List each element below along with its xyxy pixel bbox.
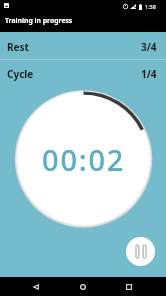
staticText: 1:38 bbox=[145, 3, 156, 10]
staticText: 3/4 bbox=[141, 40, 157, 54]
button[interactable]: Recent apps bbox=[117, 277, 141, 296]
staticText: Rest bbox=[7, 40, 29, 54]
button[interactable]: Cycle bbox=[0, 60, 166, 87]
staticText: 1/4 bbox=[141, 67, 157, 81]
staticText: Training in progress bbox=[5, 16, 73, 25]
button[interactable]: Pause bbox=[126, 237, 155, 266]
button[interactable]: Home bbox=[71, 277, 95, 296]
button[interactable]: Back bbox=[24, 277, 48, 296]
button[interactable]: Rest bbox=[0, 33, 166, 60]
staticText: Cycle bbox=[7, 67, 34, 81]
staticText: 00:02 bbox=[42, 140, 126, 179]
